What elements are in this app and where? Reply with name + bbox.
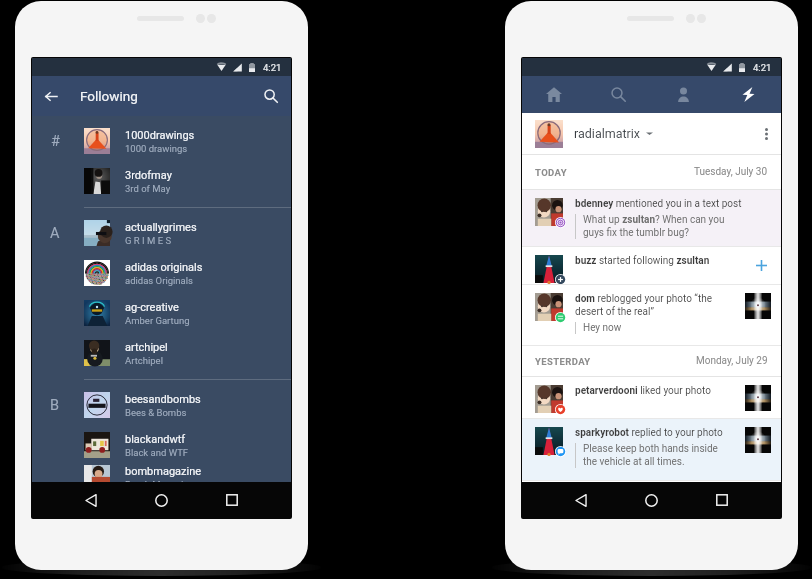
button[interactable]: A	[32, 213, 291, 253]
staticText: B	[50, 397, 60, 414]
button[interactable]: Back	[79, 488, 103, 512]
staticText: adidas Originals	[125, 275, 193, 286]
button[interactable]: Search	[586, 76, 651, 113]
staticText: #	[51, 133, 60, 150]
staticText: Monday, July 29	[696, 355, 768, 367]
button[interactable]: Back	[569, 488, 593, 512]
button[interactable]: sparkyrobot replied to your photo	[522, 419, 781, 481]
button[interactable]: ag-creative	[32, 293, 291, 333]
staticText: petarverdooni liked your photo	[575, 385, 711, 397]
staticText: Tuesday, July 30	[694, 166, 768, 178]
button[interactable]: adidas originals	[32, 253, 291, 293]
staticText: sparkyrobot replied to your photo	[575, 427, 723, 439]
staticText: blackandwtf	[125, 433, 186, 446]
staticText: Bees & Bombs	[125, 407, 187, 418]
button[interactable]: Home	[149, 488, 173, 512]
button[interactable]: Activity	[716, 76, 781, 113]
button[interactable]: bdenney mentioned you in a text post	[522, 190, 781, 247]
button[interactable]: buzz started following zsultan	[522, 247, 781, 285]
staticText: Following	[80, 88, 138, 104]
staticText: 3rd of May	[125, 183, 171, 194]
staticText: TODAY	[535, 167, 567, 178]
button[interactable]: Account	[651, 76, 716, 113]
staticText: ag-creative	[125, 301, 179, 314]
staticText: actuallygrimes	[125, 221, 197, 234]
staticText: 4:21	[263, 62, 282, 73]
button[interactable]: blackandwtf	[32, 425, 291, 465]
staticText: Black and WTF	[125, 447, 189, 458]
staticText: bombmagazine	[125, 465, 202, 478]
button[interactable]: Home	[639, 488, 663, 512]
button[interactable]: Home	[522, 76, 586, 113]
staticText: G R I M E S	[125, 235, 172, 246]
staticText: Amber Gartung	[125, 315, 190, 326]
button[interactable]: More options	[753, 121, 779, 147]
staticText: What up zsultan? When can you guys fix t…	[583, 214, 725, 239]
staticText: Bomb Magazine	[125, 479, 194, 482]
button[interactable]: 3rdofmay	[32, 161, 291, 201]
button[interactable]: bombmagazine	[32, 465, 291, 482]
staticText: 1000drawings	[125, 129, 195, 142]
staticText: artchipel	[125, 341, 168, 354]
staticText: Hey now	[583, 322, 622, 334]
staticText: adidas originals	[125, 261, 203, 274]
button[interactable]: dom reblogged your photo “the desert of …	[522, 285, 781, 346]
button[interactable]: Follow	[751, 255, 771, 275]
button[interactable]: Recents	[220, 488, 244, 512]
button[interactable]: petarverdooni liked your photo	[522, 377, 781, 419]
button[interactable]: Search	[255, 80, 287, 112]
button[interactable]: artchipel	[32, 333, 291, 373]
button[interactable]: B	[32, 385, 291, 425]
staticText: 3rdofmay	[125, 169, 172, 182]
staticText: bdenney mentioned you in a text post	[575, 198, 742, 210]
staticText: Please keep both hands inside the vehicl…	[583, 443, 718, 468]
staticText: radialmatrix	[574, 126, 641, 141]
button[interactable]: Recents	[710, 488, 734, 512]
button[interactable]: radialmatrix	[522, 113, 781, 154]
staticText: 1000 drawings	[125, 143, 188, 154]
staticText: buzz started following zsultan	[575, 255, 710, 267]
staticText: Artchipel	[125, 355, 163, 366]
staticText: beesandbombs	[125, 393, 201, 406]
button[interactable]: #	[32, 121, 291, 161]
button[interactable]: Back	[35, 80, 67, 112]
staticText: dom reblogged your photo “the desert of …	[575, 293, 739, 318]
staticText: YESTERDAY	[535, 356, 591, 367]
staticText: A	[50, 225, 60, 242]
staticText: 4:21	[753, 62, 772, 73]
